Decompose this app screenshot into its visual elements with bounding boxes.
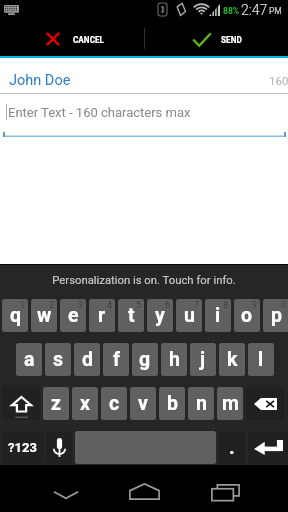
staticText: John Doe [9, 72, 71, 89]
button[interactable]: e [60, 299, 86, 332]
other: Enter [254, 440, 283, 455]
button[interactable]: c [101, 387, 127, 420]
button[interactable]: d [74, 343, 100, 376]
staticText: n [196, 392, 207, 415]
staticText: e [68, 304, 79, 327]
button[interactable]: j [190, 343, 216, 376]
staticText: d [82, 348, 93, 371]
other: Backspace [254, 398, 277, 410]
button[interactable]: CANCEL [0, 20, 144, 56]
staticText: y [155, 304, 165, 327]
staticText: 2 [49, 300, 55, 311]
button[interactable]: Home [108, 465, 181, 512]
staticText: v [138, 392, 148, 415]
staticText: c [109, 392, 120, 415]
staticText: ?123 [8, 440, 37, 455]
staticText: CANCEL [73, 35, 105, 45]
staticText: u [184, 304, 195, 327]
button[interactable]: ?123 [2, 431, 43, 464]
button[interactable]: SEND [144, 20, 288, 56]
button[interactable]: p [263, 299, 288, 332]
button[interactable]: f [103, 343, 129, 376]
button[interactable]: Personalization is on. Touch for info. [0, 274, 288, 287]
button[interactable]: Back [29, 465, 102, 512]
staticText: . [229, 436, 235, 459]
staticText: 3 [78, 300, 84, 311]
button[interactable]: k [219, 343, 245, 376]
button[interactable]: Recents [189, 465, 262, 512]
staticText: o [241, 304, 253, 327]
button[interactable]: u [176, 299, 202, 332]
staticText: r [98, 304, 106, 327]
button[interactable]: i [205, 299, 231, 332]
button[interactable]: s [45, 343, 71, 376]
button[interactable]: o [234, 299, 260, 332]
staticText: 4 [107, 300, 113, 311]
staticText: s [53, 348, 64, 371]
staticText: SEND [221, 35, 242, 45]
staticText: i [215, 304, 221, 327]
other: Voice input [53, 438, 66, 457]
button[interactable]: a [16, 343, 42, 376]
staticText: w [37, 304, 52, 327]
staticText: l [258, 348, 264, 371]
button[interactable]: n [188, 387, 214, 420]
button[interactable]: h [161, 343, 187, 376]
button[interactable]: r [89, 299, 115, 332]
button[interactable]: b [159, 387, 185, 420]
staticText: x [80, 392, 90, 415]
button[interactable]: g [132, 343, 158, 376]
button[interactable]: w [31, 299, 57, 332]
button[interactable]: m [217, 387, 243, 420]
staticText: 160 [269, 74, 288, 87]
staticText: 0 [281, 300, 287, 311]
button[interactable]: y [147, 299, 173, 332]
staticText: j [200, 348, 206, 371]
staticText: 6 [165, 300, 171, 311]
staticText: 5 [136, 300, 142, 311]
staticText: 1 [20, 300, 26, 311]
button[interactable]: Backspace [246, 387, 284, 420]
other: Shift [11, 387, 32, 420]
staticText: PM [269, 6, 282, 16]
staticText: f [113, 348, 120, 371]
staticText: 9 [252, 300, 258, 311]
staticText: 2:47 [241, 2, 268, 18]
button[interactable]: t [118, 299, 144, 332]
button[interactable]: z [43, 387, 69, 420]
staticText: 88% [223, 6, 240, 16]
staticText: m [222, 392, 239, 415]
staticText: q [10, 304, 21, 327]
staticText: h [169, 348, 180, 371]
staticText: z [51, 392, 61, 415]
button[interactable]: Shift [2, 387, 40, 420]
button[interactable]: . [219, 431, 245, 464]
staticText: t [128, 304, 135, 327]
staticText: 8 [223, 300, 229, 311]
staticText: p [271, 304, 282, 327]
button[interactable]: v [130, 387, 156, 420]
button[interactable]: Enter [248, 431, 288, 464]
button[interactable]: Voice input [46, 431, 72, 464]
button[interactable]: l [248, 343, 274, 376]
staticText: g [139, 348, 151, 371]
button[interactable]: q [2, 299, 28, 332]
staticText: a [24, 348, 35, 371]
staticText: b [167, 392, 178, 415]
staticText: Enter Text - 160 characters max [8, 105, 191, 120]
button[interactable]: x [72, 387, 98, 420]
staticText: k [227, 348, 238, 371]
staticText: 7 [194, 300, 200, 311]
